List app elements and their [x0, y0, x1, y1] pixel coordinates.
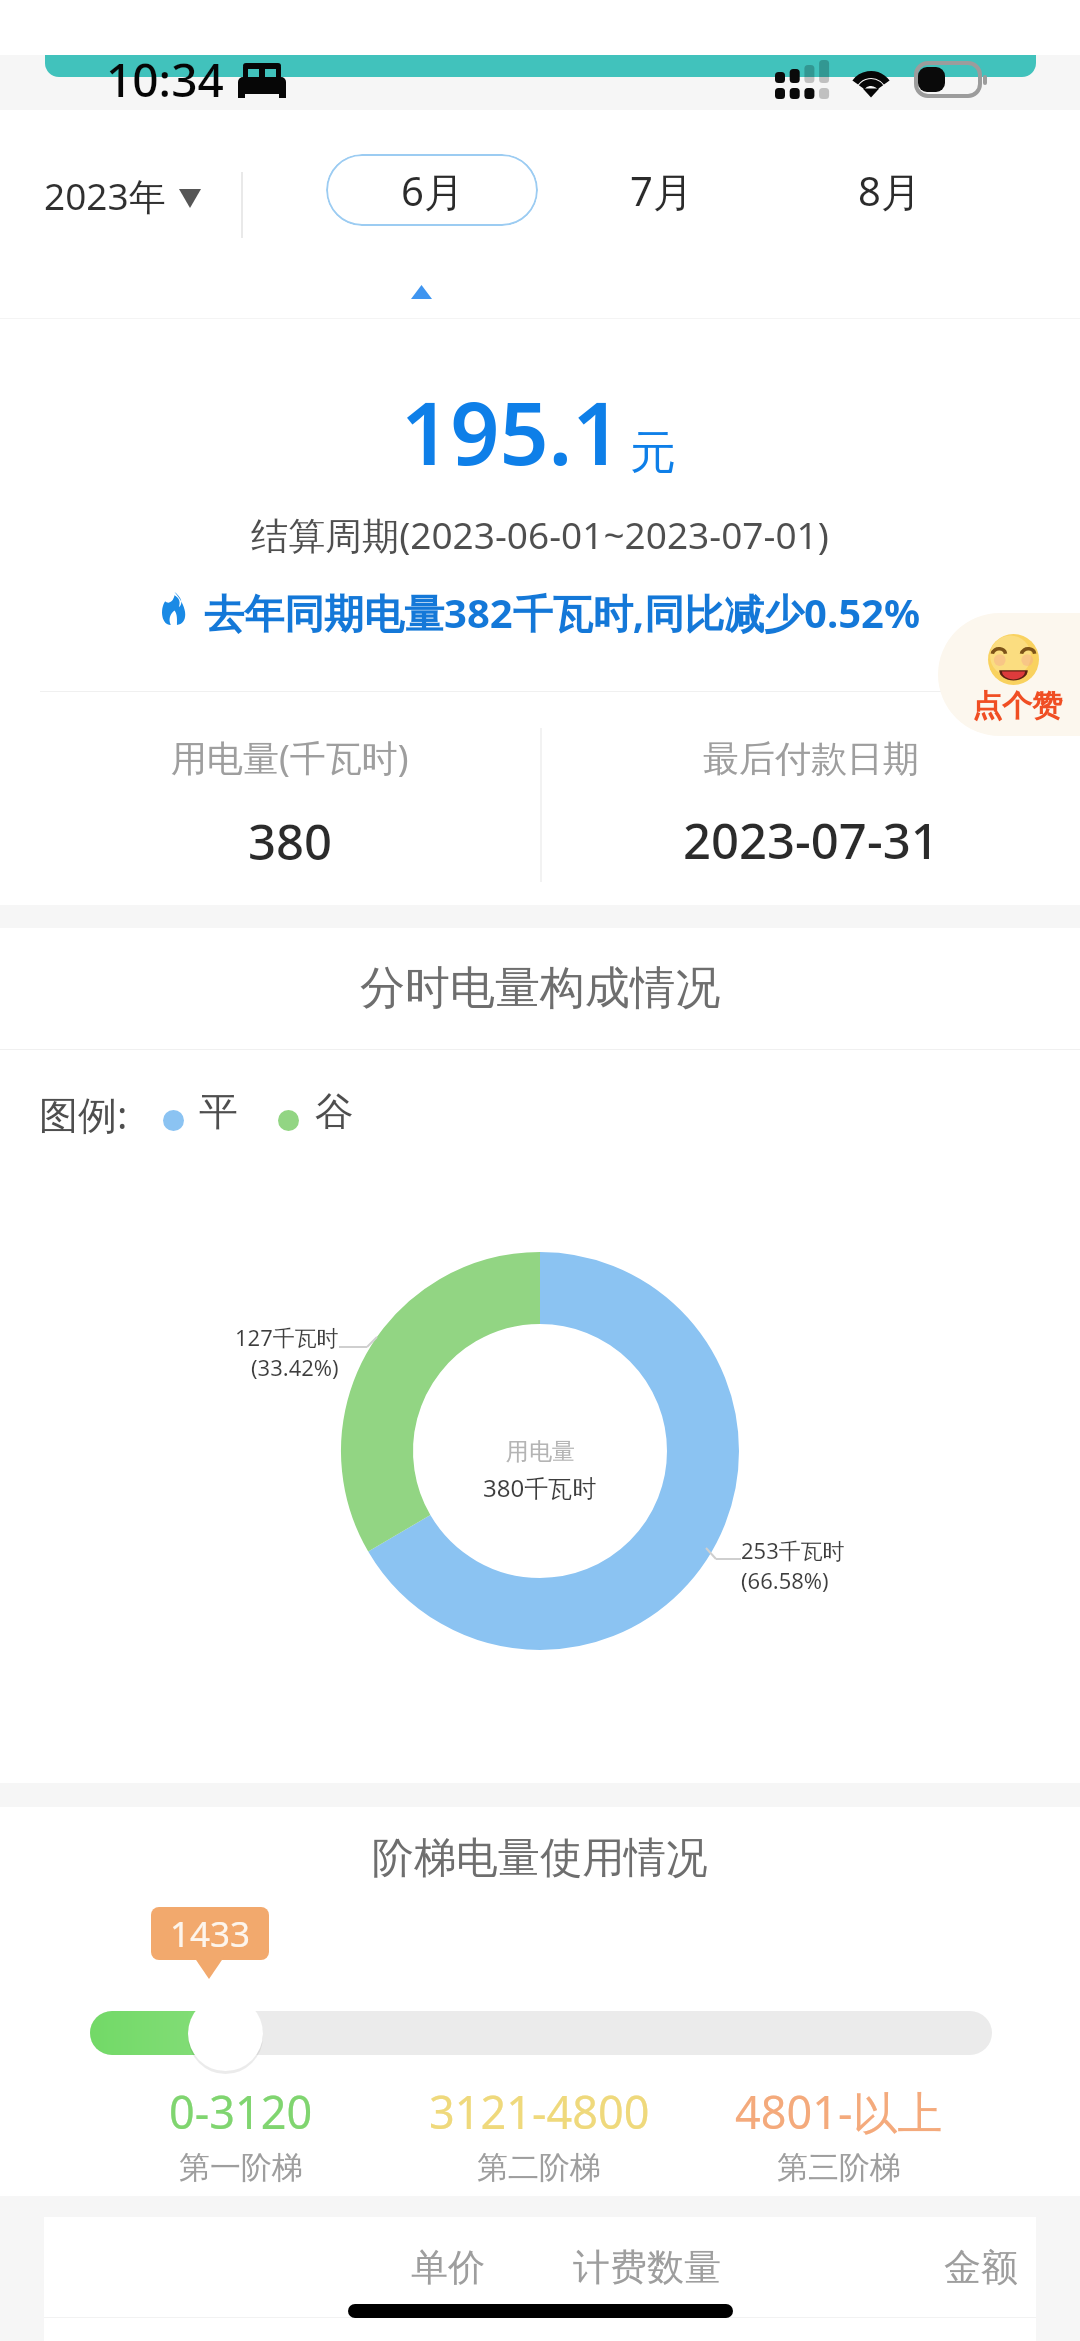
button[interactable]: 2023年 — [44, 163, 201, 227]
staticText: 点个赞 — [972, 687, 1062, 725]
staticText: (66.58%) — [741, 1565, 829, 1595]
staticText: 谷 — [315, 1087, 354, 1136]
staticText: 用电量 — [506, 1437, 575, 1466]
button[interactable]: Ladder slider handle — [188, 1996, 263, 2071]
staticText: 4801-以上 — [735, 2081, 943, 2142]
staticText: 10:34 — [106, 48, 224, 111]
staticText: 第二阶梯 — [477, 2148, 601, 2187]
staticText: 8月 — [858, 163, 921, 218]
button[interactable]: 3121-4800 — [339, 2081, 739, 2187]
staticText: 127千瓦时 — [235, 1322, 339, 1352]
staticText: 0-3120 — [169, 2081, 313, 2142]
staticText: 金额 — [944, 2244, 1018, 2291]
staticText: 380 — [248, 808, 333, 875]
button[interactable]: 4801-以上 — [639, 2081, 1039, 2187]
staticText: 阶梯电量使用情况 — [372, 1832, 708, 1885]
staticText: 1433 — [170, 1910, 251, 1958]
button[interactable]: 单价 — [384, 2217, 512, 2317]
staticText: 7月 — [630, 163, 693, 218]
button[interactable]: Like — [938, 613, 1080, 736]
staticText: 第一阶梯 — [179, 2148, 303, 2187]
staticText: (33.42%) — [251, 1352, 339, 1382]
staticText: 平 — [199, 1087, 238, 1136]
staticText: 2023年 — [44, 170, 166, 221]
staticText: 3121-4800 — [429, 2081, 650, 2142]
staticText: 计费数量 — [573, 2244, 721, 2291]
staticText: 253千瓦时 — [741, 1535, 845, 1565]
staticText: 元 — [630, 424, 676, 482]
button[interactable]: 6月 — [326, 154, 538, 226]
staticText: 图例: — [39, 1087, 128, 1140]
staticText: 用电量(千瓦时) — [171, 733, 409, 782]
button[interactable]: 7月 — [561, 154, 761, 226]
staticText: 最后付款日期 — [703, 736, 919, 781]
staticText: 单价 — [411, 2244, 485, 2291]
staticText: 结算周期(2023-06-01~2023-07-01) — [0, 509, 1080, 560]
staticText: 195.1 — [401, 373, 622, 490]
staticText: 去年同期电量382千瓦时,同比减少0.52% — [204, 585, 920, 640]
button[interactable]: 金额 — [917, 2217, 1045, 2317]
staticText: 6月 — [401, 163, 464, 218]
button[interactable]: 8月 — [789, 154, 989, 226]
staticText: 第三阶梯 — [777, 2148, 901, 2187]
button[interactable]: 计费数量 — [539, 2217, 755, 2317]
staticText: 380千瓦时 — [483, 1471, 597, 1504]
button[interactable]: 0-3120 — [41, 2081, 441, 2187]
staticText: 分时电量构成情况 — [360, 960, 720, 1017]
staticText: 2023-07-31 — [683, 807, 939, 874]
